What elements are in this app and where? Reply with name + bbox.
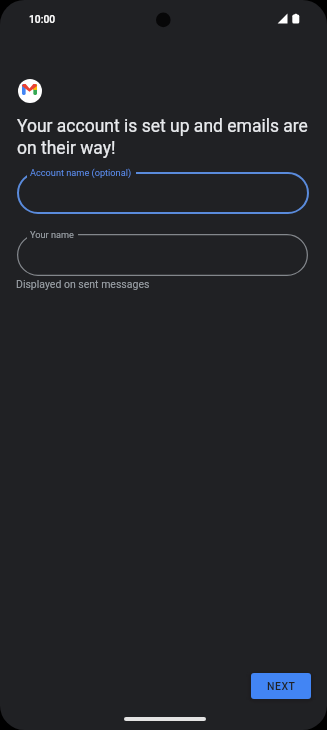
staticText: Account name (optional) [30,167,132,178]
button[interactable] [17,172,309,214]
staticText: NEXT [267,680,296,692]
staticText: 10:00 [29,13,56,25]
staticText: Your name [30,229,74,240]
staticText: Your account is set up and emails are on… [17,116,311,158]
staticText: Displayed on sent messages [16,278,150,290]
button[interactable] [17,234,308,276]
button[interactable]: NEXT [251,673,311,699]
